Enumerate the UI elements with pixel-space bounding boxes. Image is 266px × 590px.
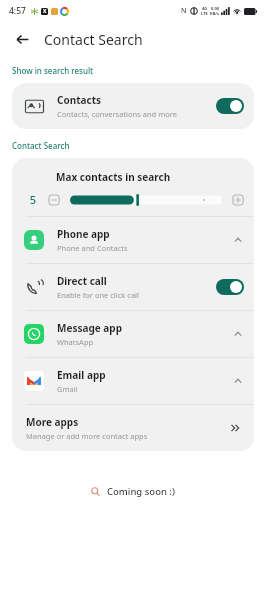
button[interactable]: Email app	[12, 358, 254, 404]
staticText: Message app	[57, 321, 122, 335]
staticText: Gmail	[57, 384, 78, 394]
staticText: 4G	[202, 6, 208, 11]
button[interactable]: Toggle	[216, 279, 244, 295]
staticText: Direct call	[57, 274, 107, 288]
button[interactable]: Phone app	[12, 217, 254, 263]
button[interactable]: Message app	[12, 311, 254, 357]
staticText: Manage or add more contact apps	[26, 431, 148, 441]
button[interactable]: Expand	[232, 328, 244, 340]
staticText: More apps	[26, 415, 79, 429]
staticText: N	[181, 6, 187, 16]
staticText: WhatsApp	[57, 337, 94, 347]
staticText: 4:57	[9, 5, 26, 17]
staticText: Email app	[57, 368, 106, 382]
button[interactable]	[70, 194, 222, 206]
button[interactable]: Expand	[232, 375, 244, 387]
button[interactable]: More apps	[12, 405, 254, 451]
button[interactable]: Contacts	[12, 83, 254, 129]
button[interactable]: Expand	[232, 234, 244, 246]
staticText: Coming soon :)	[107, 485, 175, 498]
other: More	[230, 422, 242, 434]
staticText: Contact Search	[12, 140, 70, 151]
staticText: KB/s	[210, 11, 219, 16]
button[interactable]: Decrease	[48, 194, 60, 206]
staticText: Contacts, conversations and more	[57, 109, 177, 119]
staticText: 0.00	[211, 6, 219, 11]
staticText: Contact Search	[44, 30, 143, 49]
button[interactable]: Coming soon :)	[91, 485, 175, 498]
staticText: 5	[22, 192, 44, 207]
staticText: Phone app	[57, 227, 110, 241]
button[interactable]: Increase	[232, 194, 244, 206]
staticText: Show in search result	[12, 65, 94, 76]
staticText: X	[43, 8, 47, 15]
staticText: Max contacts in search	[56, 170, 171, 184]
button[interactable]: Back	[10, 27, 34, 51]
button[interactable]: Toggle	[216, 98, 244, 114]
staticText: Enable for one click call	[57, 290, 139, 300]
staticText: Contacts	[57, 93, 102, 107]
staticText: Phone and Contacts	[57, 243, 128, 253]
button[interactable]: Direct call	[12, 264, 254, 310]
staticText: LTE	[201, 11, 208, 16]
